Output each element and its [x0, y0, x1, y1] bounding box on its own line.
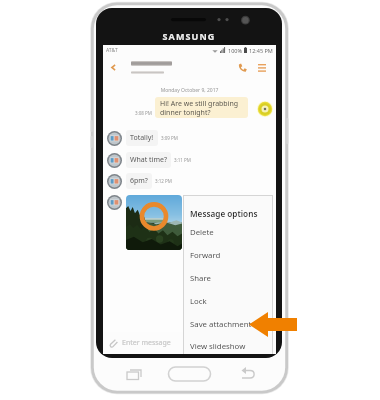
staticText: 100%: [228, 47, 243, 54]
button[interactable]: [126, 195, 182, 250]
staticText: Hi! Are we still grabbing dinner tonight…: [160, 99, 248, 117]
staticText: Delete: [190, 227, 214, 238]
staticText: View slideshow: [190, 341, 246, 352]
staticText: Totally!: [130, 133, 154, 143]
staticText: What time?: [130, 155, 167, 165]
staticText: 12:45 PM: [249, 47, 273, 54]
staticText: 3:12 PM: [155, 178, 172, 184]
staticText: Save attachment: [190, 319, 252, 330]
button[interactable]: Hi! Are we still grabbing dinner tonight…: [155, 97, 248, 118]
staticText: 3:08 PM: [135, 110, 152, 116]
staticText: Share: [190, 273, 211, 284]
staticText: Monday October 9, 2017: [103, 87, 276, 94]
staticText: 3:09 PM: [161, 135, 178, 141]
staticText: AT&T: [106, 47, 118, 54]
button[interactable]: Back: [103, 55, 123, 80]
staticText: 6pm?: [130, 176, 148, 186]
button[interactable]: Totally!: [126, 130, 158, 146]
button[interactable]: 6pm?: [126, 173, 152, 189]
button[interactable]: Share: [183, 267, 273, 290]
button[interactable]: Save attachment: [183, 313, 273, 336]
button[interactable]: Call: [232, 55, 252, 80]
button[interactable]: Menu: [252, 55, 272, 80]
button[interactable]: Lock: [183, 290, 273, 313]
staticText: Enter message: [122, 338, 171, 348]
button[interactable]: Delete: [183, 221, 273, 244]
button[interactable]: View slideshow: [183, 335, 273, 358]
staticText: Lock: [190, 296, 207, 307]
staticText: Forward: [190, 250, 221, 261]
staticText: 3:11 PM: [174, 157, 191, 163]
button[interactable]: Forward: [183, 244, 273, 267]
button[interactable]: What time?: [126, 152, 171, 168]
other: Attach: [108, 338, 118, 348]
staticText: Message options: [190, 208, 258, 219]
staticText: SAMSUNG: [96, 30, 282, 42]
